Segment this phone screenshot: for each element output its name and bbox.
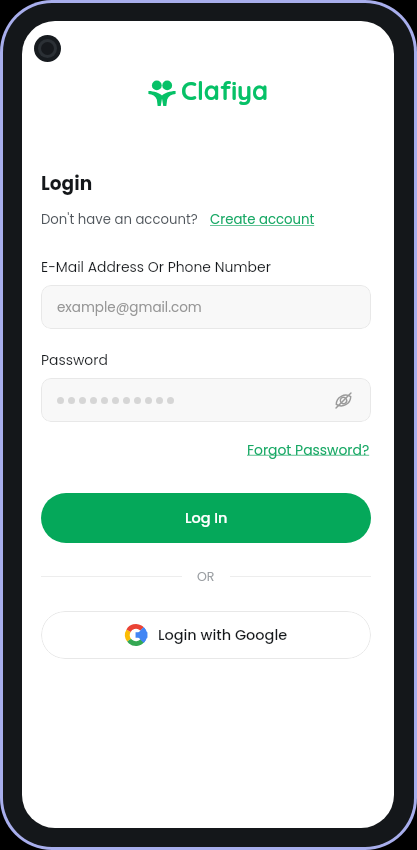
staticText: Login with Google [158, 625, 288, 645]
staticText: OR [197, 568, 215, 585]
button[interactable]: Log In [41, 493, 371, 543]
staticText: Password [41, 350, 108, 369]
staticText: Create account [210, 210, 315, 229]
button[interactable]: example@gmail.com [41, 285, 371, 329]
button[interactable]: Show password [331, 388, 355, 412]
staticText: E-Mail Address Or Phone Number [41, 257, 271, 276]
button[interactable]: Show password [41, 378, 371, 422]
staticText: Forgot Password? [247, 440, 370, 459]
button[interactable]: Login with Google [41, 611, 371, 659]
staticText: Log In [185, 508, 228, 528]
button[interactable]: Forgot Password? [247, 440, 370, 459]
staticText: Clafiya [181, 74, 269, 106]
button[interactable]: Create account [210, 210, 315, 229]
staticText: Login [41, 171, 93, 197]
staticText: example@gmail.com [57, 298, 202, 317]
staticText: Don't have an account? [41, 210, 198, 229]
